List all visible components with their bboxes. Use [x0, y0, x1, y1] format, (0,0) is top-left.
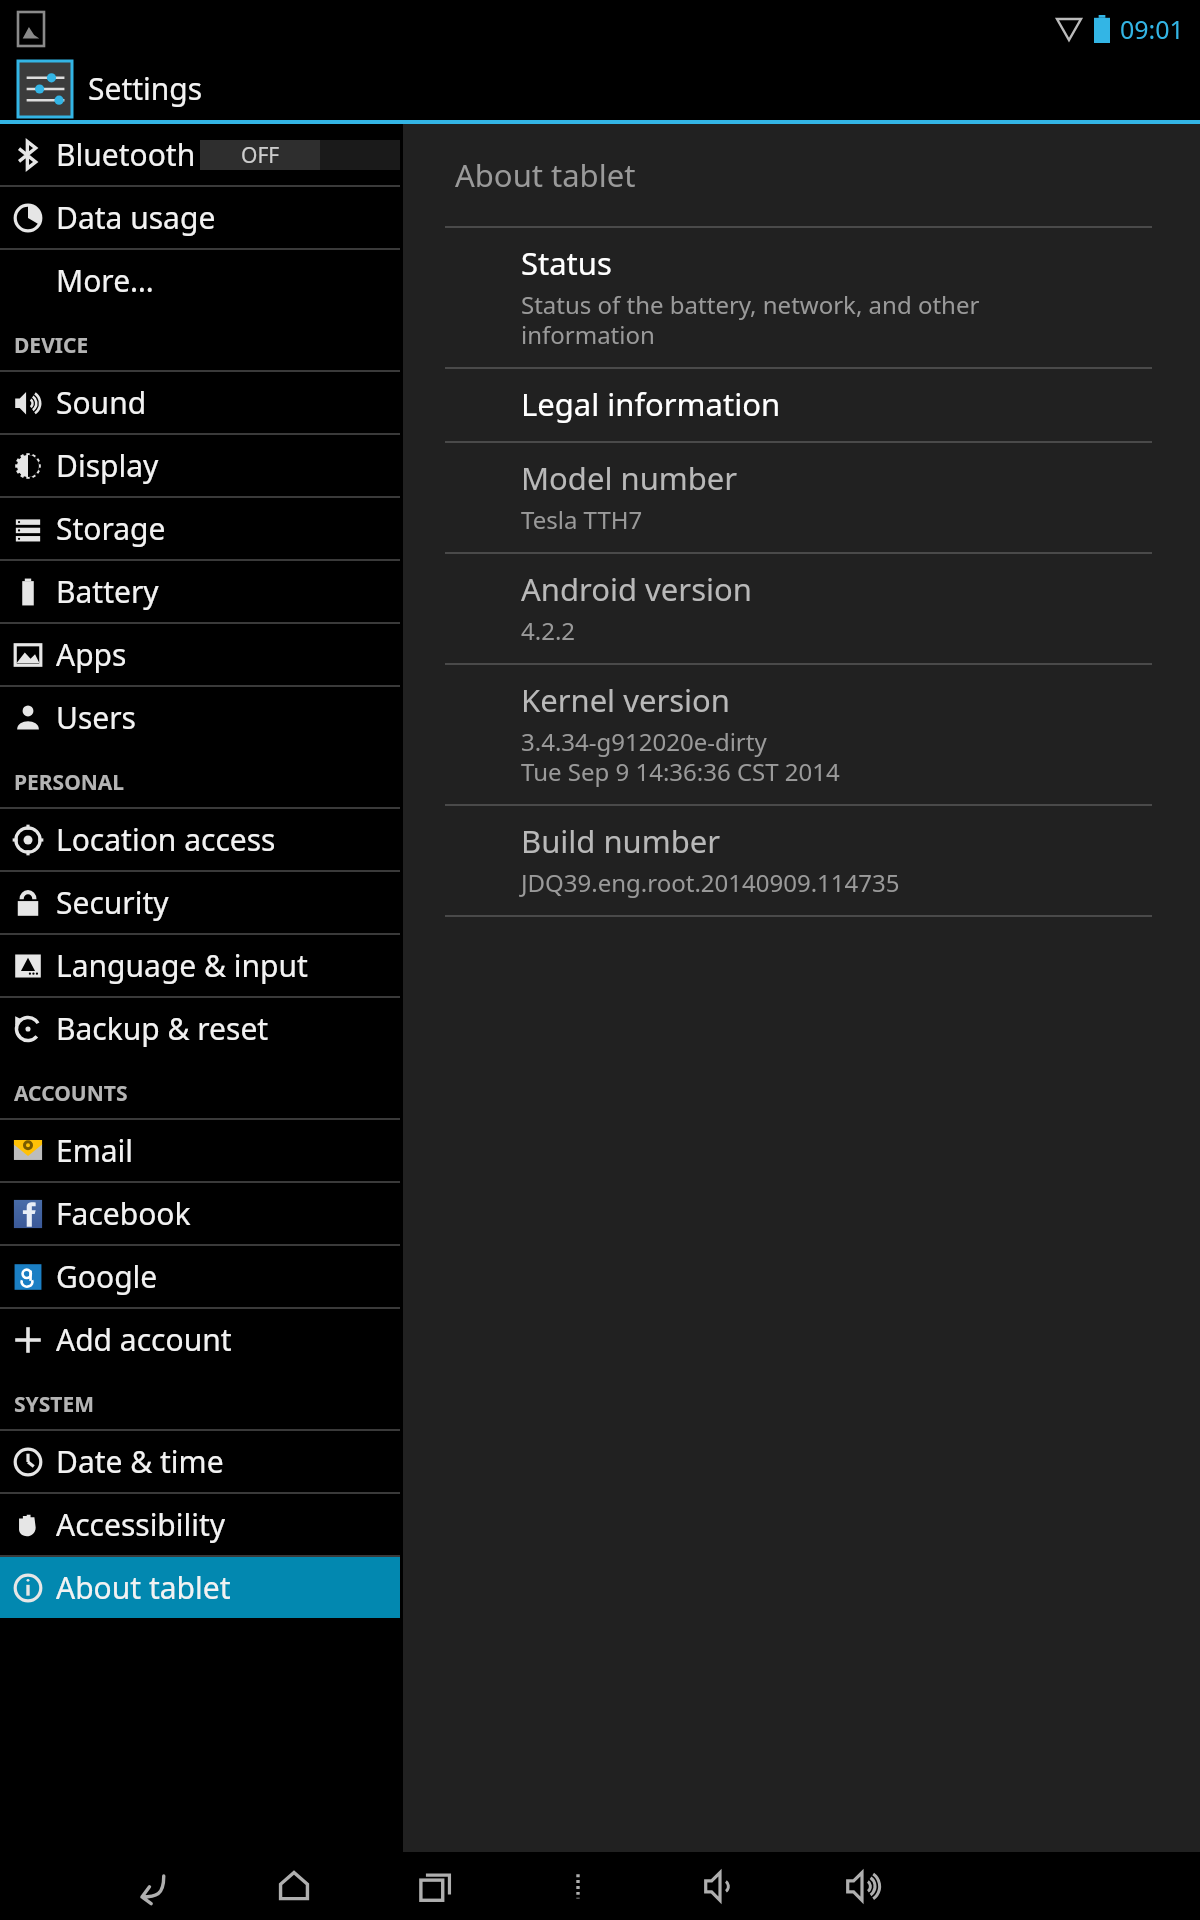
- staticText: JDQ39.eng.root.20140909.114735: [521, 866, 900, 899]
- staticText: Email: [56, 1130, 134, 1171]
- button[interactable]: Volume down: [688, 1854, 752, 1918]
- staticText: Google: [56, 1256, 158, 1297]
- button[interactable]: More…: [0, 250, 400, 311]
- button[interactable]: Facebook: [0, 1183, 400, 1244]
- staticText: Status of the battery, network, and othe…: [521, 288, 980, 351]
- button[interactable]: Legal information: [403, 369, 1200, 441]
- staticText: Accessibility: [56, 1504, 226, 1545]
- button[interactable]: Sound: [0, 372, 400, 433]
- button[interactable]: Backup & reset: [0, 998, 400, 1059]
- button[interactable]: Add account: [0, 1309, 400, 1370]
- staticText: Model number: [521, 457, 738, 499]
- staticText: Display: [56, 445, 159, 486]
- staticText: Apps: [56, 634, 127, 675]
- button[interactable]: Google: [0, 1246, 400, 1307]
- staticText: About tablet: [56, 1567, 231, 1608]
- button[interactable]: Kernel version: [403, 665, 1200, 804]
- button[interactable]: Android version: [403, 554, 1200, 663]
- staticText: Status: [521, 242, 612, 284]
- button[interactable]: Build number: [403, 806, 1200, 915]
- staticText: More…: [56, 260, 154, 301]
- staticText: Date & time: [56, 1441, 224, 1482]
- button[interactable]: Apps: [0, 624, 400, 685]
- staticText: Settings: [88, 68, 203, 109]
- staticText: Add account: [56, 1319, 232, 1360]
- button[interactable]: Email: [0, 1120, 400, 1181]
- staticText: Kernel version: [521, 679, 730, 721]
- button[interactable]: About tablet: [0, 1557, 400, 1618]
- staticText: Backup & reset: [56, 1008, 269, 1049]
- staticText: SYSTEM: [14, 1390, 94, 1419]
- button[interactable]: Language & input: [0, 935, 400, 996]
- button[interactable]: Location access: [0, 809, 400, 870]
- button[interactable]: Home: [262, 1854, 326, 1918]
- button[interactable]: Users: [0, 687, 400, 748]
- button[interactable]: Status: [403, 228, 1200, 367]
- button[interactable]: Battery: [0, 561, 400, 622]
- button[interactable]: Recent apps: [404, 1854, 468, 1918]
- button[interactable]: Back: [120, 1854, 184, 1918]
- staticText: 4.2.2: [521, 614, 576, 647]
- button[interactable]: Bluetooth: [0, 124, 400, 185]
- staticText: Tesla TTH7: [521, 503, 643, 536]
- staticText: PERSONAL: [14, 768, 125, 797]
- staticText: Build number: [521, 820, 721, 862]
- button[interactable]: Accessibility: [0, 1494, 400, 1555]
- staticText: OFF: [241, 141, 280, 170]
- button[interactable]: Display: [0, 435, 400, 496]
- staticText: DEVICE: [14, 331, 89, 360]
- staticText: Data usage: [56, 197, 216, 238]
- staticText: Sound: [56, 382, 147, 423]
- button[interactable]: Model number: [403, 443, 1200, 552]
- staticText: Language & input: [56, 945, 308, 986]
- staticText: Location access: [56, 819, 276, 860]
- button[interactable]: Menu: [546, 1854, 610, 1918]
- other: Settings app icon: [18, 61, 72, 117]
- staticText: About tablet: [455, 154, 636, 196]
- button[interactable]: Volume up: [830, 1854, 894, 1918]
- staticText: Legal information: [521, 383, 781, 425]
- staticText: Facebook: [56, 1193, 191, 1234]
- staticText: Battery: [56, 571, 159, 612]
- button[interactable]: Data usage: [0, 187, 400, 248]
- staticText: 3.4.34-g912020e-dirty Tue Sep 9 14:36:36…: [521, 725, 840, 788]
- staticText: Users: [56, 697, 136, 738]
- staticText: 09:01: [1120, 12, 1184, 46]
- staticText: Bluetooth: [56, 134, 196, 175]
- button[interactable]: Storage: [0, 498, 400, 559]
- staticText: Storage: [56, 508, 166, 549]
- button[interactable]: Date & time: [0, 1431, 400, 1492]
- staticText: Security: [56, 882, 169, 923]
- button[interactable]: Security: [0, 872, 400, 933]
- staticText: Android version: [521, 568, 752, 610]
- staticText: ACCOUNTS: [14, 1079, 128, 1108]
